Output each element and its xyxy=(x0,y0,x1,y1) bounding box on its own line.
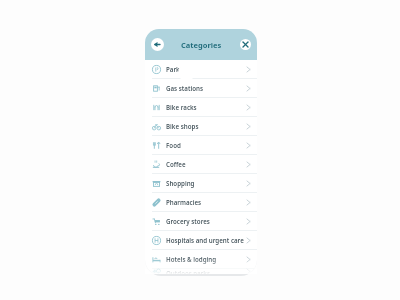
staticText: Categories xyxy=(181,40,222,50)
staticText: Parking xyxy=(166,65,247,73)
staticText: Bike shops xyxy=(166,122,247,130)
button[interactable]: Hospitals and urgent care xyxy=(145,231,257,249)
staticText: Hotels & lodging xyxy=(166,255,247,263)
staticText: Pharmacies xyxy=(166,198,247,206)
button[interactable]: Grocery stores xyxy=(145,212,257,230)
staticText: Gas stations xyxy=(166,84,247,92)
button[interactable]: Coffee xyxy=(145,155,257,173)
staticText: Bike racks xyxy=(166,103,247,111)
button[interactable]: Food xyxy=(145,136,257,154)
button[interactable]: Back xyxy=(151,38,164,51)
button[interactable]: Bike racks xyxy=(145,98,257,116)
button[interactable]: Bike shops xyxy=(145,117,257,135)
staticText: Coffee xyxy=(166,160,247,168)
staticText: Outdoor parks xyxy=(166,269,247,274)
button[interactable]: Gas stations xyxy=(145,79,257,97)
staticText: Shopping xyxy=(166,179,247,187)
button[interactable]: Shopping xyxy=(145,174,257,192)
button[interactable]: Outdoor parks xyxy=(145,269,257,274)
staticText: Hospitals and urgent care xyxy=(166,236,247,244)
staticText: Grocery stores xyxy=(166,217,247,225)
button[interactable]: Pharmacies xyxy=(145,193,257,211)
button[interactable]: Hotels & lodging xyxy=(145,250,257,268)
button[interactable]: Parking xyxy=(145,60,257,78)
staticText: Food xyxy=(166,141,247,149)
button[interactable]: Close xyxy=(240,39,251,50)
